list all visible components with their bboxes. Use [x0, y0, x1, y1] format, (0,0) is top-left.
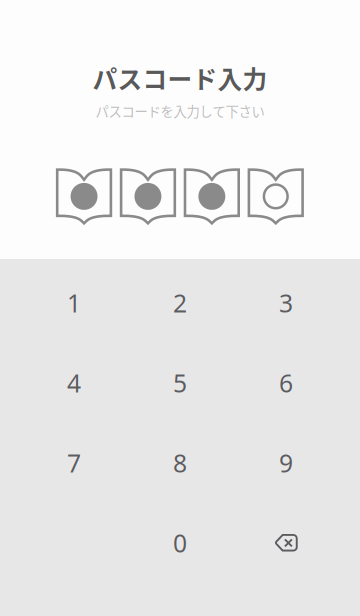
staticText: 7	[67, 446, 81, 480]
staticText: パスコード入力	[92, 60, 267, 96]
staticText: 2	[173, 286, 187, 320]
button[interactable]: 3	[233, 263, 339, 343]
button[interactable]: 8	[127, 423, 233, 503]
button[interactable]: 2	[127, 263, 233, 343]
staticText: 6	[279, 366, 293, 400]
button[interactable]: 7	[21, 423, 127, 503]
staticText: 5	[173, 366, 187, 400]
button[interactable]: 0	[127, 503, 233, 583]
button[interactable]: 6	[233, 343, 339, 423]
staticText: 9	[279, 446, 293, 480]
button[interactable]: 5	[127, 343, 233, 423]
staticText: 0	[173, 526, 187, 560]
staticText: 4	[67, 366, 81, 400]
staticText: 3	[279, 286, 293, 320]
button[interactable]: 1	[21, 263, 127, 343]
button[interactable]: 4	[21, 343, 127, 423]
staticText: 8	[173, 446, 187, 480]
button[interactable]: Delete	[233, 503, 339, 583]
staticText: パスコードを入力して下さい	[95, 101, 264, 121]
staticText: 1	[67, 286, 81, 320]
button[interactable]: 9	[233, 423, 339, 503]
